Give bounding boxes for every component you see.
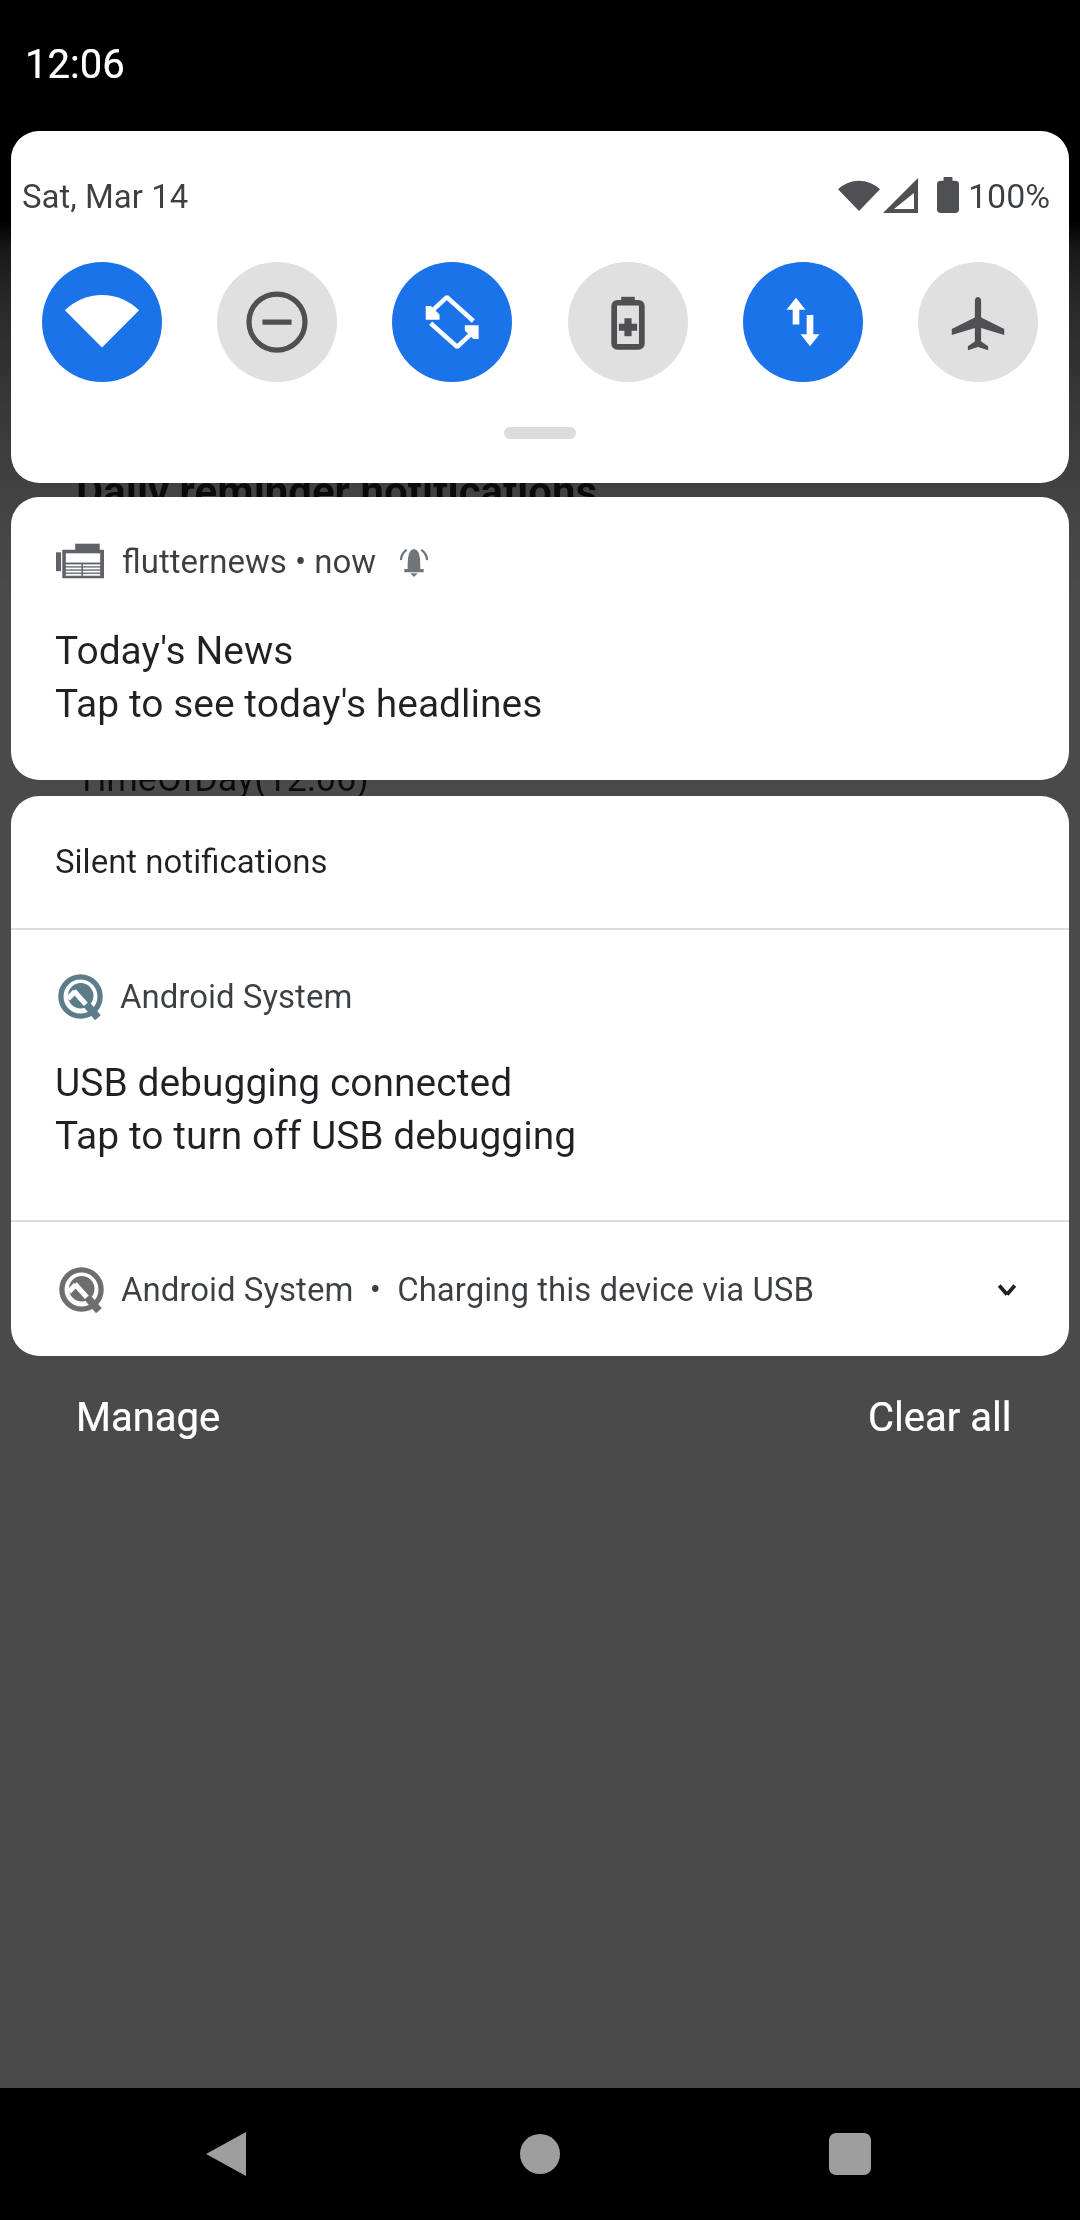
staticText: Clear all bbox=[868, 1394, 1012, 1441]
button[interactable]: Android System • Charging this device vi… bbox=[11, 1222, 1069, 1356]
staticText: flutternews • now bbox=[122, 542, 377, 581]
button[interactable]: Android System bbox=[11, 930, 1069, 1220]
button[interactable]: Airplane mode bbox=[918, 262, 1038, 382]
button[interactable]: flutternews • now bbox=[11, 497, 1069, 780]
staticText: 12:06 bbox=[25, 41, 125, 88]
button[interactable]: Wi-Fi bbox=[42, 262, 162, 382]
staticText: Tap to see today's headlines bbox=[55, 681, 543, 727]
button[interactable]: Back bbox=[182, 2088, 270, 2220]
staticText: Tap to turn off USB debugging bbox=[55, 1113, 577, 1159]
button[interactable]: Mobile data bbox=[743, 262, 863, 382]
staticText: 100% bbox=[968, 176, 1051, 216]
staticText: Today's News bbox=[55, 628, 294, 674]
button[interactable]: Home bbox=[496, 2088, 584, 2220]
staticText: TimeOfDay(12:06) bbox=[76, 758, 369, 800]
button[interactable]: Do not disturb bbox=[217, 262, 337, 382]
button[interactable]: Silent notifications bbox=[11, 796, 1069, 928]
staticText: Android System • Charging this device vi… bbox=[121, 1270, 814, 1309]
staticText: Silent notifications bbox=[55, 842, 328, 881]
staticText: Sat, Mar 14 bbox=[22, 177, 189, 216]
staticText: Android System bbox=[120, 977, 353, 1016]
button[interactable]: Recents bbox=[806, 2088, 894, 2220]
button[interactable]: Manage bbox=[48, 1374, 249, 1461]
button[interactable]: Clear all bbox=[840, 1374, 1040, 1461]
staticText: USB debugging connected bbox=[55, 1060, 513, 1106]
button[interactable]: Battery saver bbox=[568, 262, 688, 382]
button[interactable]: Auto rotate bbox=[392, 262, 512, 382]
staticText: Daily reminder notifications bbox=[76, 467, 598, 516]
staticText: Manage bbox=[76, 1394, 221, 1441]
